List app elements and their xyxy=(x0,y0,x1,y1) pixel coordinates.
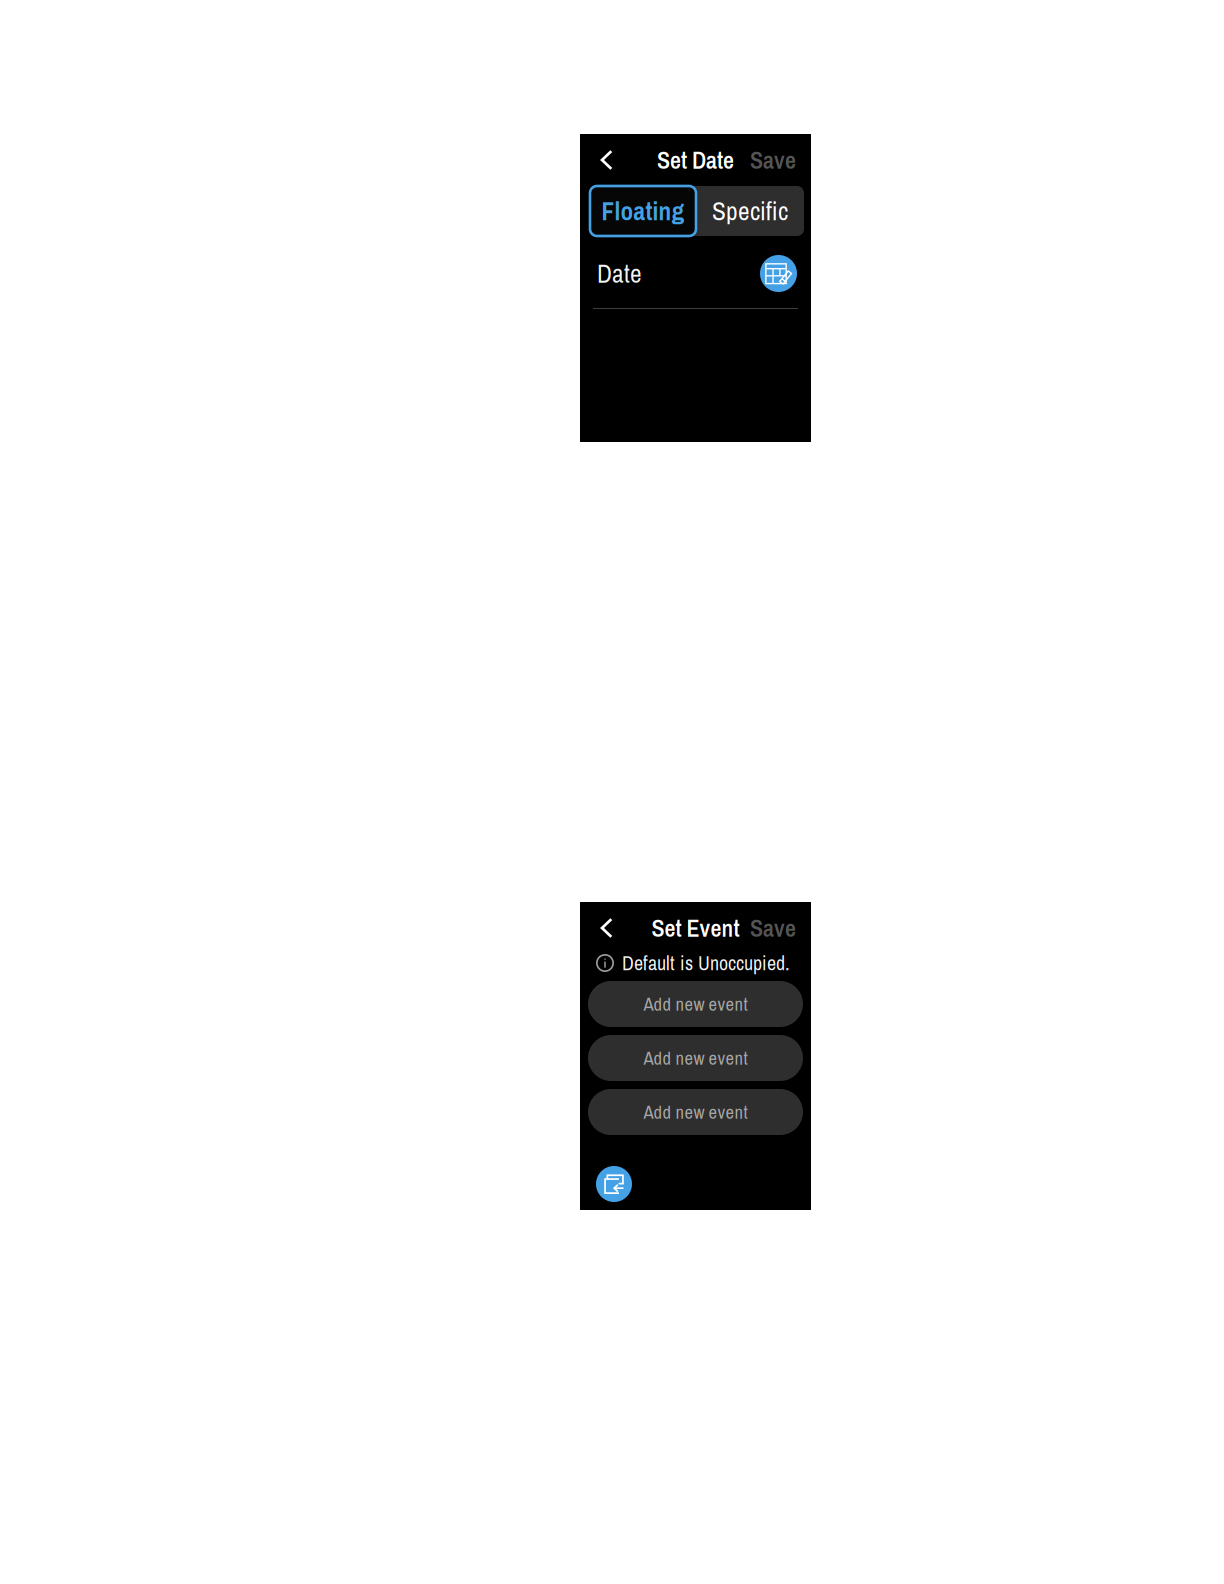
button[interactable]: Back xyxy=(592,910,623,946)
button[interactable]: Add new event xyxy=(580,981,811,1027)
button[interactable]: Add new event xyxy=(580,1035,811,1081)
staticText: Add new event xyxy=(643,1099,747,1124)
staticText: Save xyxy=(750,912,796,944)
button[interactable]: Save xyxy=(750,910,796,946)
staticText: Set Date xyxy=(657,144,734,176)
staticText: Add new event xyxy=(643,991,747,1016)
staticText: Set Event xyxy=(651,912,739,944)
staticText: Default is Unoccupied. xyxy=(622,949,790,976)
staticText: Save xyxy=(750,144,796,176)
button[interactable]: Specific xyxy=(696,186,804,236)
button[interactable]: Date xyxy=(580,255,811,292)
button[interactable]: Back xyxy=(592,142,623,178)
staticText: Floating xyxy=(601,194,684,228)
staticText: Date xyxy=(597,256,642,290)
button[interactable]: Add new event xyxy=(580,1089,811,1135)
staticText: Add new event xyxy=(643,1045,747,1070)
button[interactable]: Save xyxy=(750,142,796,178)
button[interactable]: Floating xyxy=(590,186,696,236)
button[interactable]: Duplicate xyxy=(596,1166,632,1202)
staticText: Specific xyxy=(712,194,788,228)
